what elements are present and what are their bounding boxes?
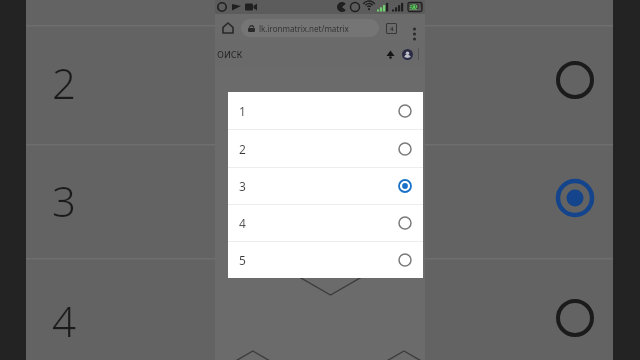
button[interactable]: Notifications <box>383 47 397 61</box>
button[interactable]: Profile <box>400 47 414 61</box>
button[interactable]: 2 <box>228 130 423 167</box>
staticText: lk.ironmatrix.net/matrix <box>259 23 349 34</box>
staticText: 2 <box>239 141 246 157</box>
staticText: 9:01 <box>409 2 423 12</box>
button[interactable]: 4 <box>228 205 423 241</box>
staticText: 4 <box>52 292 76 349</box>
button[interactable]: 3 <box>228 168 423 204</box>
staticText: 2 <box>52 54 76 111</box>
button[interactable]: More options <box>403 17 425 39</box>
staticText: 5 <box>239 252 246 268</box>
staticText: 3 <box>52 172 76 229</box>
button[interactable]: 1 <box>228 92 423 129</box>
staticText: 4 <box>239 215 246 231</box>
staticText: ОИСК <box>217 48 243 60</box>
staticText: 4 <box>390 25 394 33</box>
staticText: 1 <box>239 103 246 119</box>
button[interactable]: 5 <box>228 242 423 278</box>
button[interactable]: lk.ironmatrix.net/matrix <box>241 19 379 37</box>
staticText: 3 <box>239 178 246 194</box>
button[interactable]: Tabs <box>379 16 403 40</box>
button[interactable]: Home <box>215 15 241 41</box>
